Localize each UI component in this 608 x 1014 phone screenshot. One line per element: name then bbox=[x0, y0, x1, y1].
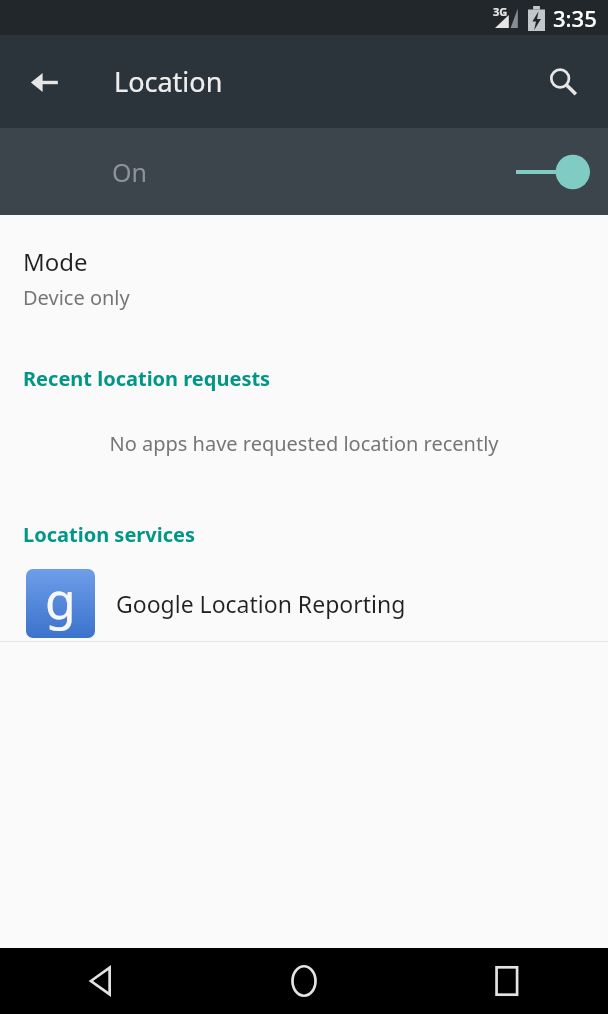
button[interactable]: Home bbox=[202, 948, 405, 1014]
staticText: No apps have requested location recently bbox=[24, 430, 584, 457]
button[interactable]: On bbox=[0, 128, 608, 215]
staticText: 3:35 bbox=[553, 3, 597, 33]
staticText: Google Location Reporting bbox=[116, 588, 406, 619]
staticText: 3G bbox=[493, 4, 508, 19]
button[interactable]: Back bbox=[0, 948, 202, 1014]
staticText: g bbox=[45, 569, 76, 634]
button[interactable]: g bbox=[0, 565, 608, 641]
button[interactable]: Recent apps bbox=[405, 948, 608, 1014]
staticText: On bbox=[112, 155, 147, 189]
staticText: Location bbox=[114, 63, 223, 100]
staticText: Location services bbox=[23, 521, 195, 548]
staticText: Recent location requests bbox=[23, 365, 271, 392]
staticText: Device only bbox=[23, 284, 130, 311]
button[interactable]: Mode bbox=[0, 215, 608, 327]
button[interactable]: Navigate up bbox=[16, 54, 72, 110]
button[interactable]: Search bbox=[535, 54, 591, 110]
staticText: Mode bbox=[23, 245, 88, 278]
